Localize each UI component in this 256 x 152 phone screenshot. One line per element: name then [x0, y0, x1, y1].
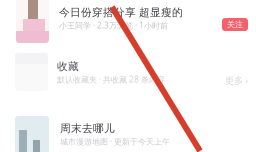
button[interactable]: 收藏: [0, 53, 256, 105]
staticText: 周末去哪儿: [60, 122, 115, 135]
staticText: 关注: [227, 20, 243, 29]
button[interactable]: 周末去哪儿: [0, 116, 256, 152]
staticText: 更多 ›: [225, 74, 248, 86]
staticText: 城市漫游地图 · 更新于今天上午: [60, 136, 170, 147]
staticText: 今日份穿搭分享 超显瘦的: [59, 6, 183, 19]
staticText: 小王同学 · 2.3万浏览 · 1小时前: [59, 20, 168, 31]
staticText: 默认收藏夹 · 共收藏 28 条内容: [57, 74, 165, 85]
staticText: 收藏: [57, 60, 79, 73]
button[interactable]: 今日份穿搭分享 超显瘦的: [0, 0, 256, 46]
